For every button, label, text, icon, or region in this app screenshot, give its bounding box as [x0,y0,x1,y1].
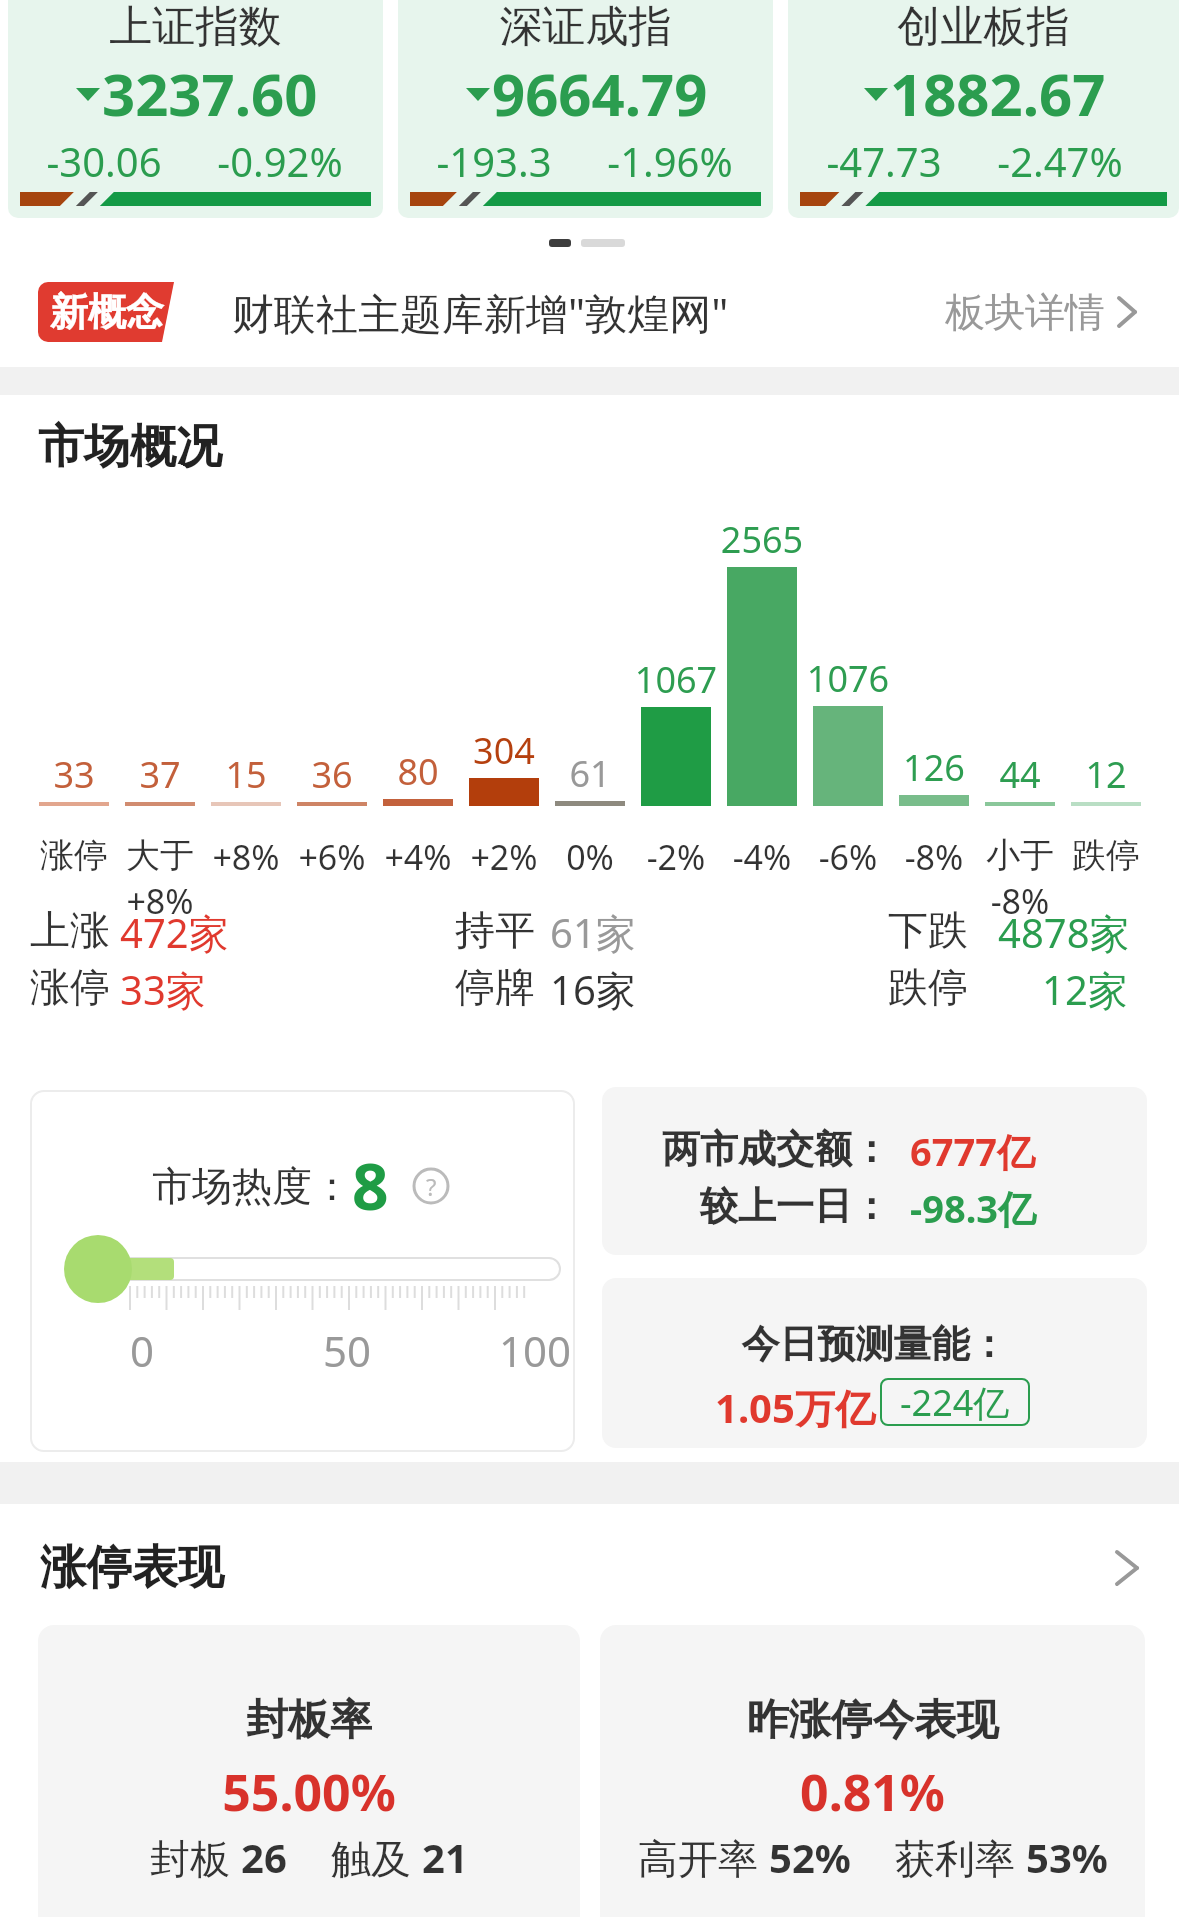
staticText: 3237.60 [102,54,318,133]
staticText: 封板率 [38,1694,580,1747]
staticText: 今日预测量能： [602,1320,1147,1368]
staticText: +4% [363,834,473,880]
staticText: 大于 +8% [105,834,215,924]
staticText: 停牌 [455,962,535,1012]
staticText: -2.47% [980,134,1140,188]
staticText: +8% [191,834,301,880]
button[interactable]: 创业板指 [788,0,1179,218]
staticText: 0 [112,1322,172,1379]
staticText: 33家 [120,962,206,1017]
button[interactable]: 深证成指 [398,0,773,218]
button[interactable]: 市场热度： [30,1090,575,1452]
staticText: 两市成交额： [602,1125,890,1173]
button[interactable]: 封板率 [38,1625,580,1917]
staticText: 1067 [621,655,731,704]
staticText: 板块详情 [945,287,1105,337]
staticText: 深证成指 [398,0,773,54]
staticText: 33 [19,750,129,799]
staticText: 1882.67 [890,54,1106,133]
staticText: 6777亿 [910,1125,1035,1177]
staticText: -224亿 [900,1378,1010,1426]
staticText: 1.05万亿 [715,1380,875,1435]
staticText: -30.06 [24,134,184,188]
staticText: 36 [277,750,387,799]
staticText: 涨停 [19,834,129,877]
staticText: 21 [422,1830,468,1884]
staticText: 市场概况 [38,418,222,476]
button[interactable]: 昨涨停今表现 [600,1625,1145,1917]
staticText: 8 [352,1142,389,1229]
staticText: 15 [191,750,301,799]
staticText: -47.73 [804,134,964,188]
staticText: 12家 [1042,962,1128,1017]
staticText: 61 [535,749,645,798]
staticText: -4% [707,834,817,880]
staticText: 53% [1026,1830,1108,1884]
staticText: 44 [965,750,1075,799]
staticText: 持平 [455,905,535,955]
staticText: 跌停 [888,962,968,1012]
staticText: +2% [449,834,559,880]
staticText: 小于 -8% [965,834,1075,924]
staticText: ? [426,1170,437,1203]
staticText: 跌停 [1051,834,1161,877]
staticText: 获利率 [895,1830,1026,1885]
staticText: 52% [769,1830,851,1884]
staticText: 16家 [550,962,636,1017]
staticText: 472家 [120,905,229,960]
staticText: -193.3 [414,134,574,188]
staticText: -1.96% [590,134,750,188]
staticText: 9664.79 [492,54,708,133]
button[interactable]: 今日预测量能： [602,1278,1147,1448]
staticText: 55.00% [38,1758,580,1826]
staticText: 1076 [793,654,903,703]
staticText: 上涨 [30,905,110,955]
button[interactable]: 涨停表现 [0,1538,1179,1598]
staticText: 12 [1051,750,1161,799]
staticText: 高开率 [638,1830,769,1885]
staticText: 涨停表现 [40,1539,224,1597]
staticText: 上证指数 [8,0,383,54]
staticText: 4878家 [998,905,1130,960]
staticText: 100 [480,1322,590,1379]
button[interactable]: 新概念 [0,272,1179,352]
staticText: 0% [535,834,645,880]
staticText: 304 [449,726,559,775]
staticText: 昨涨停今表现 [600,1694,1145,1747]
staticText: 26 [241,1830,287,1884]
staticText: +6% [277,834,387,880]
staticText: -8% [879,834,989,880]
staticText: 创业板指 [788,0,1179,54]
staticText: 80 [363,747,473,796]
staticText: 0.81% [600,1758,1145,1826]
staticText: 下跌 [888,905,968,955]
staticText: 61家 [550,905,636,960]
staticText: 市场热度： [152,1161,352,1211]
staticText: 财联社主题库新增"敦煌网" [232,284,729,341]
staticText: -98.3亿 [910,1182,1037,1234]
staticText: 封板 [150,1830,241,1885]
staticText: 较上一日： [602,1182,890,1230]
staticText: 126 [879,743,989,792]
button[interactable]: 两市成交额： [602,1087,1147,1255]
staticText: -6% [793,834,903,880]
staticText: 37 [105,750,215,799]
staticText: 新概念 [50,288,164,336]
staticText: 涨停 [30,962,110,1012]
staticText: 触及 [331,1830,422,1885]
staticText: -0.92% [200,134,360,188]
button[interactable]: 上证指数 [8,0,383,218]
staticText: 2565 [707,515,817,564]
staticText: -2% [621,834,731,880]
staticText: 50 [317,1322,377,1379]
